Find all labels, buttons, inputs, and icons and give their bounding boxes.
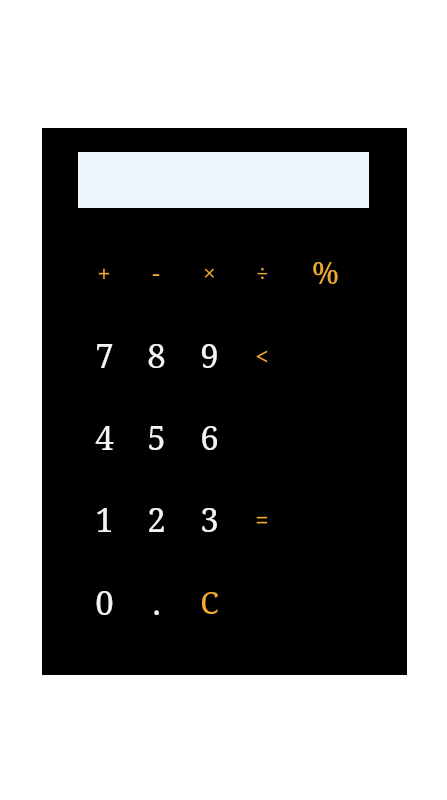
- button[interactable]: Zero: [79, 570, 129, 634]
- staticText: .: [152, 580, 161, 625]
- button[interactable]: Five: [131, 405, 181, 469]
- button[interactable]: Three: [184, 487, 234, 551]
- staticText: 8: [147, 333, 166, 378]
- staticText: 4: [95, 415, 114, 460]
- staticText: +: [97, 256, 111, 289]
- staticText: <: [255, 339, 269, 372]
- staticText: 2: [147, 497, 166, 542]
- button[interactable]: Two: [131, 487, 181, 551]
- button[interactable]: Seven: [79, 323, 129, 387]
- staticText: 7: [95, 333, 114, 378]
- staticText: ÷: [256, 257, 269, 287]
- button[interactable]: Six: [184, 405, 234, 469]
- button[interactable]: Decimal point: [131, 570, 181, 634]
- button[interactable]: Nine: [184, 323, 234, 387]
- button[interactable]: Percent: [300, 240, 350, 304]
- button[interactable]: Plus: [79, 240, 129, 304]
- staticText: 9: [200, 333, 219, 378]
- staticText: C: [200, 582, 219, 623]
- staticText: ×: [203, 257, 216, 287]
- button[interactable]: Equals: [237, 487, 287, 551]
- staticText: 6: [200, 415, 219, 460]
- button[interactable]: Divide: [237, 240, 287, 304]
- button[interactable]: Minus: [131, 240, 181, 304]
- staticText: -: [152, 256, 160, 289]
- button[interactable]: Clear: [184, 570, 234, 634]
- button[interactable]: Multiply: [184, 240, 234, 304]
- button[interactable]: Eight: [131, 323, 181, 387]
- button[interactable]: Four: [79, 405, 129, 469]
- staticText: %: [312, 252, 339, 293]
- staticText: 1: [95, 497, 114, 542]
- staticText: =: [255, 503, 269, 536]
- staticText: 0: [95, 580, 114, 625]
- staticText: 5: [147, 415, 166, 460]
- staticText: 3: [200, 497, 219, 542]
- button[interactable]: One: [79, 487, 129, 551]
- button[interactable]: Backspace: [237, 323, 287, 387]
